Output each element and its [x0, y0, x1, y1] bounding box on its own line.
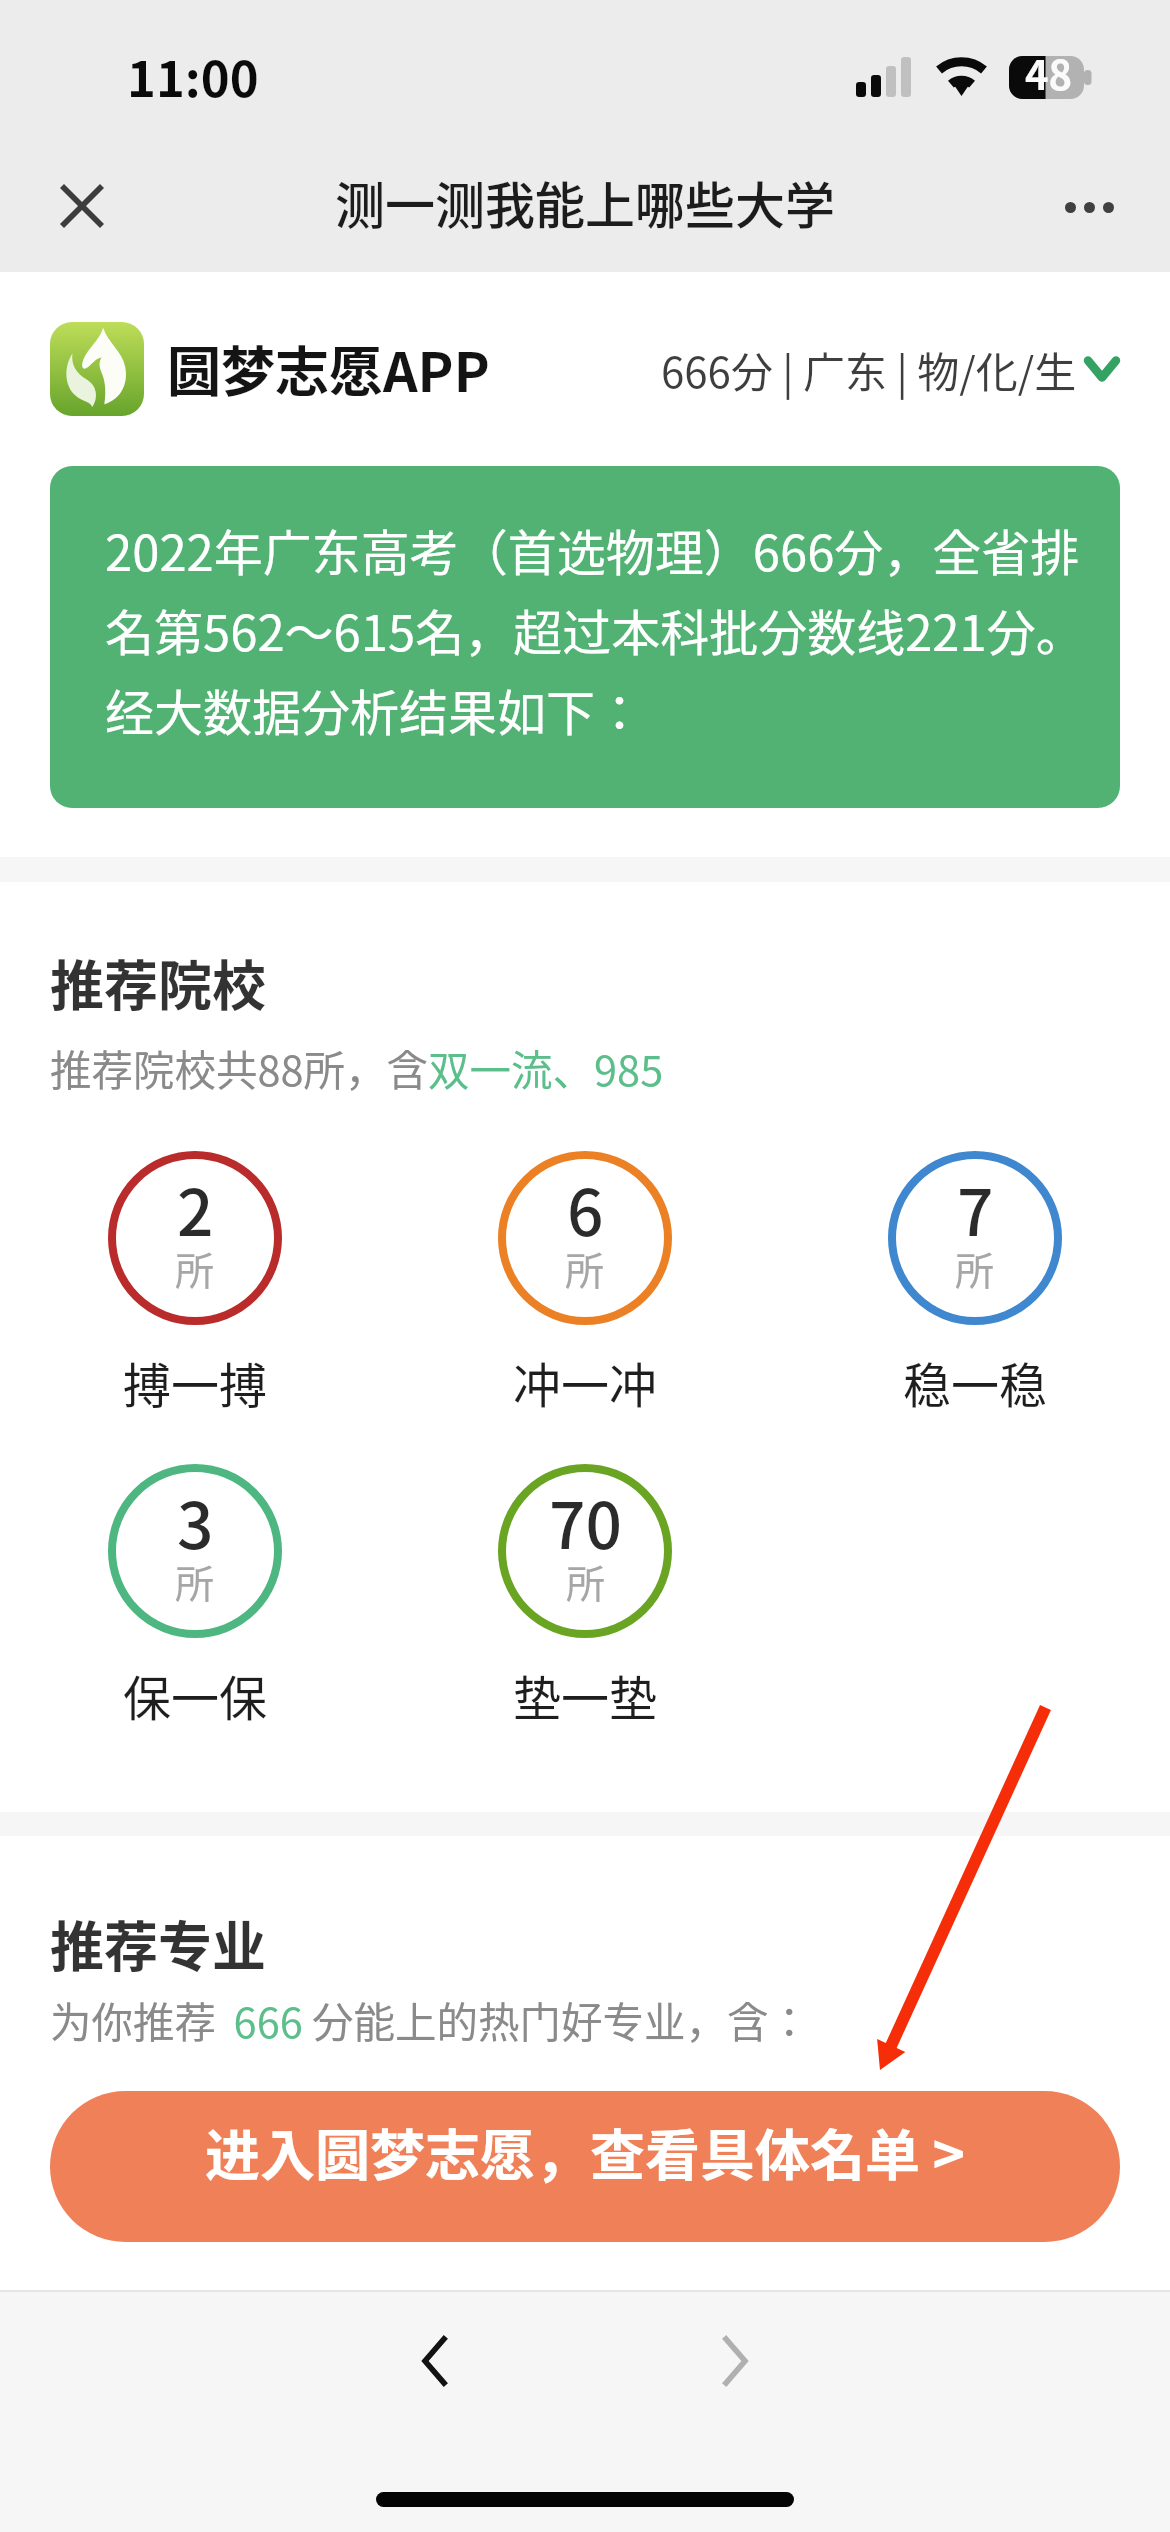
button[interactable]: 2	[0, 1151, 390, 1414]
staticText: 为你推荐 666 分能上的热门好专业，含：	[50, 1992, 810, 2050]
staticText: 保一保	[123, 1671, 268, 1727]
staticText: 48	[1025, 56, 1073, 99]
staticText: 测一测我能上哪些大学	[335, 173, 835, 237]
staticText: 所	[566, 1563, 606, 1607]
staticText: 11:00	[127, 46, 259, 110]
staticText: 所	[175, 1563, 215, 1607]
staticText: 推荐院校共88所，含双一流、985	[50, 1040, 664, 1098]
staticText: 2022年广东高考（首选物理）666分，全省排名第562～615名，超过本科批分…	[105, 507, 1085, 747]
staticText: 7	[957, 1178, 994, 1250]
staticText: 70	[549, 1491, 622, 1563]
staticText: 进入圆梦志愿，查看具体名单 >	[205, 2119, 965, 2189]
button[interactable]: 进入圆梦志愿，查看具体名单 >	[50, 2091, 1120, 2242]
staticText: 3	[177, 1491, 214, 1563]
button[interactable]: 6	[390, 1151, 780, 1414]
button[interactable]: Back	[374, 2301, 494, 2421]
staticText: 冲一冲	[513, 1358, 658, 1414]
staticText: 所	[955, 1250, 995, 1294]
staticText: 666分 | 广东 | 物/化/生	[661, 337, 1077, 401]
button[interactable]: Forward	[675, 2301, 795, 2421]
staticText: 推荐院校	[50, 948, 266, 1020]
staticText: 2	[177, 1178, 214, 1250]
button[interactable]: 666分 | 广东 | 物/化/生	[661, 337, 1120, 401]
button[interactable]: App icon	[50, 322, 144, 416]
staticText: 搏一搏	[123, 1358, 268, 1414]
button[interactable]: More options	[1029, 147, 1149, 267]
staticText: 圆梦志愿APP	[167, 341, 490, 405]
staticText: 所	[565, 1250, 605, 1294]
button[interactable]: 70	[390, 1464, 780, 1727]
button[interactable]: Close	[22, 146, 142, 266]
staticText: 6	[567, 1178, 604, 1250]
button[interactable]: 3	[0, 1464, 390, 1727]
button[interactable]: 7	[780, 1151, 1170, 1414]
staticText: 推荐专业	[50, 1909, 266, 1981]
staticText: 垫一垫	[513, 1671, 658, 1727]
staticText: 所	[175, 1250, 215, 1294]
staticText: 稳一稳	[903, 1358, 1048, 1414]
